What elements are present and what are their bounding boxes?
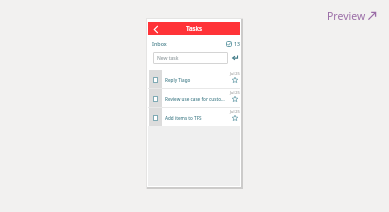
button[interactable]: Add items to TFS xyxy=(148,108,240,127)
staticText: Add items to TFS xyxy=(165,115,229,121)
button[interactable]: Preview xyxy=(327,9,377,23)
button[interactable]: New task xyxy=(153,52,228,64)
button[interactable]: Review use case for custom... xyxy=(148,89,240,108)
staticText: Reply Tiago xyxy=(165,77,229,83)
staticText: New task xyxy=(157,55,179,62)
staticText: Tasks xyxy=(186,24,202,32)
staticText: Jul 25 xyxy=(230,109,240,114)
staticText: Preview xyxy=(327,9,366,23)
staticText: 13 xyxy=(234,40,240,47)
button[interactable]: Reply Tiago xyxy=(148,70,240,89)
button[interactable]: Back xyxy=(150,23,162,35)
button[interactable]: Add task xyxy=(230,53,239,62)
staticText: Review use case for custom... xyxy=(165,96,229,102)
staticText: Jul 25 xyxy=(230,90,240,95)
staticText: Inbox xyxy=(152,40,167,47)
staticText: Jul 25 xyxy=(230,71,240,76)
